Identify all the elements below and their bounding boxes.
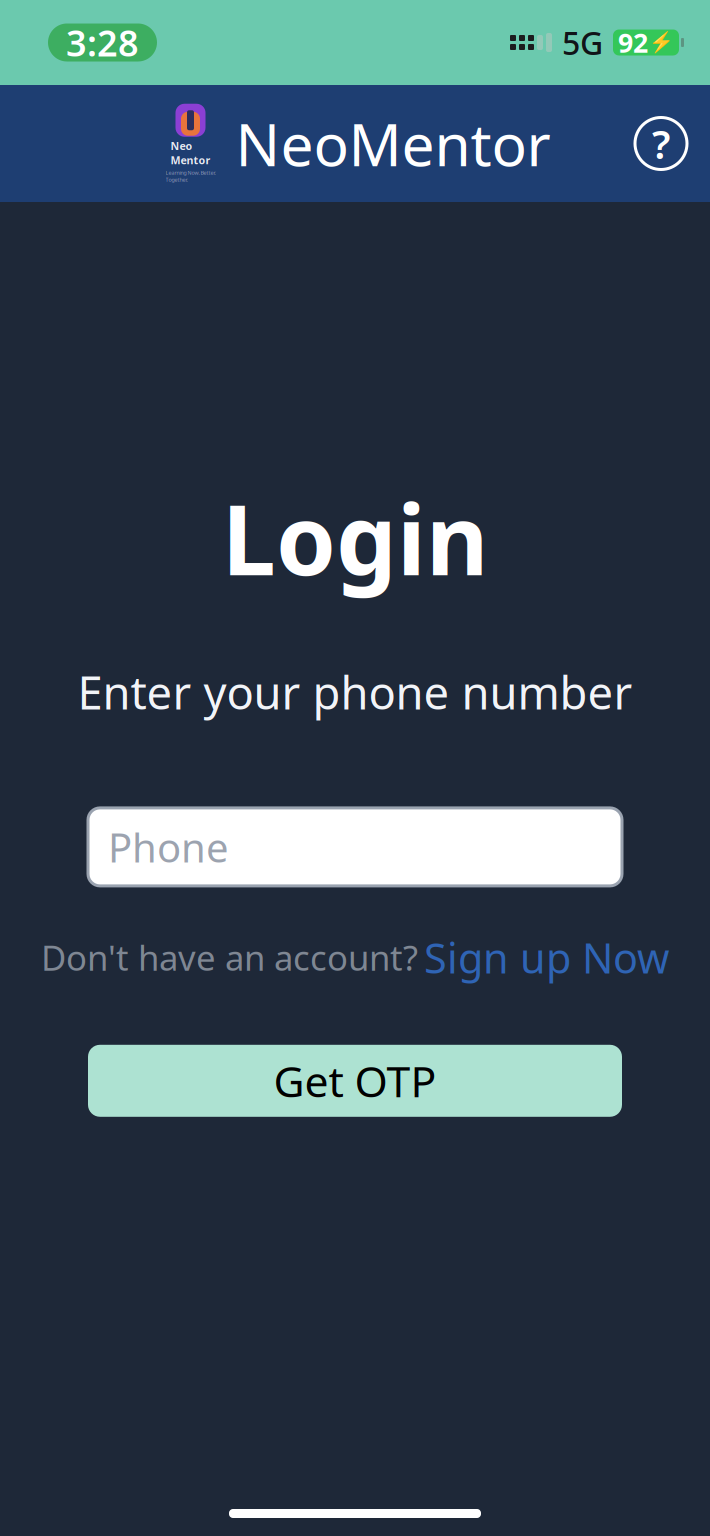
button[interactable]: Sign up Now: [424, 930, 669, 985]
staticText: ?: [652, 117, 670, 170]
staticText: Get OTP: [273, 1052, 436, 1109]
staticText: 3:28: [66, 19, 139, 66]
staticText: Phone: [108, 820, 229, 873]
button[interactable]: Get OTP: [88, 1045, 622, 1117]
staticText: Enter your phone number: [77, 662, 632, 722]
staticText: Learning Now. Better. Together.: [165, 169, 215, 183]
staticText: Don't have an account?: [41, 934, 418, 980]
staticText: Neo Mentor: [170, 139, 210, 167]
staticText: Login: [222, 474, 488, 602]
button[interactable]: Help: [628, 110, 694, 176]
staticText: Sign up Now: [424, 930, 669, 985]
staticText: 92: [618, 25, 648, 60]
staticText: NeoMentor: [235, 104, 550, 182]
button[interactable]: Phone number field: [88, 808, 622, 886]
staticText: 5G: [562, 21, 603, 64]
staticText: ⚡: [649, 31, 674, 54]
